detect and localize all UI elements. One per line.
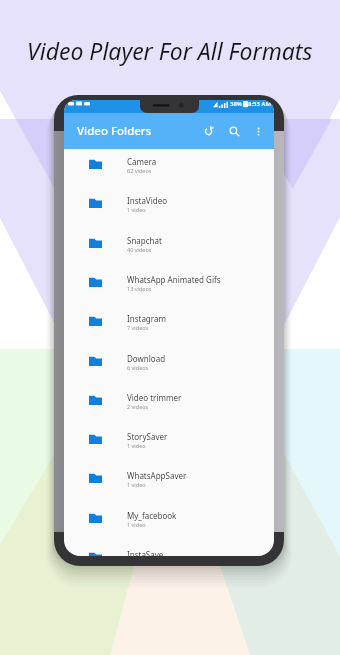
button[interactable]: WhatsApp Animated Gifs (64, 274, 274, 298)
button[interactable]: WhatsAppSaver (64, 470, 274, 494)
button[interactable]: My_facebook (64, 510, 274, 534)
staticText: Instagram (127, 313, 166, 324)
staticText: My_facebook (127, 510, 177, 521)
staticText: Snapchat (127, 235, 162, 246)
button[interactable]: More options (248, 121, 268, 141)
staticText: 40 videos (127, 246, 152, 253)
button[interactable]: InstaSave (64, 549, 274, 556)
staticText: 2 videos (127, 403, 149, 410)
staticText: InstaVideo (127, 195, 167, 206)
button[interactable]: Download (64, 353, 274, 377)
button[interactable]: StorySaver (64, 431, 274, 455)
staticText: Camera (127, 156, 157, 167)
staticText: 1 video (127, 442, 146, 449)
staticText: 1 video (127, 521, 146, 528)
button[interactable]: Instagram (64, 313, 274, 337)
staticText: WhatsAppSaver (127, 470, 187, 481)
staticText: 1 video (127, 206, 146, 213)
staticText: StorySaver (127, 431, 168, 442)
button[interactable]: Refresh (196, 119, 220, 143)
button[interactable]: InstaVideo (64, 195, 274, 219)
staticText: Video trimmer (127, 392, 182, 403)
button[interactable]: Video trimmer (64, 392, 274, 416)
staticText: 6 videos (127, 364, 149, 371)
staticText: 7 videos (127, 324, 149, 331)
staticText: WhatsApp Animated Gifs (127, 274, 221, 285)
button[interactable]: Search (222, 119, 246, 143)
button[interactable]: Snapchat (64, 235, 274, 259)
staticText: 62 videos (127, 167, 152, 174)
staticText: Download (127, 353, 166, 364)
staticText: Video Player For All Formats (27, 35, 313, 66)
staticText: InstaSave (127, 549, 164, 556)
staticText: 8:53 AM (248, 100, 271, 108)
staticText: 13 videos (127, 285, 152, 292)
staticText: 38% (230, 100, 242, 108)
staticText: 1 video (127, 481, 146, 488)
staticText: Video Folders (77, 123, 152, 139)
button[interactable]: Camera (64, 156, 274, 180)
